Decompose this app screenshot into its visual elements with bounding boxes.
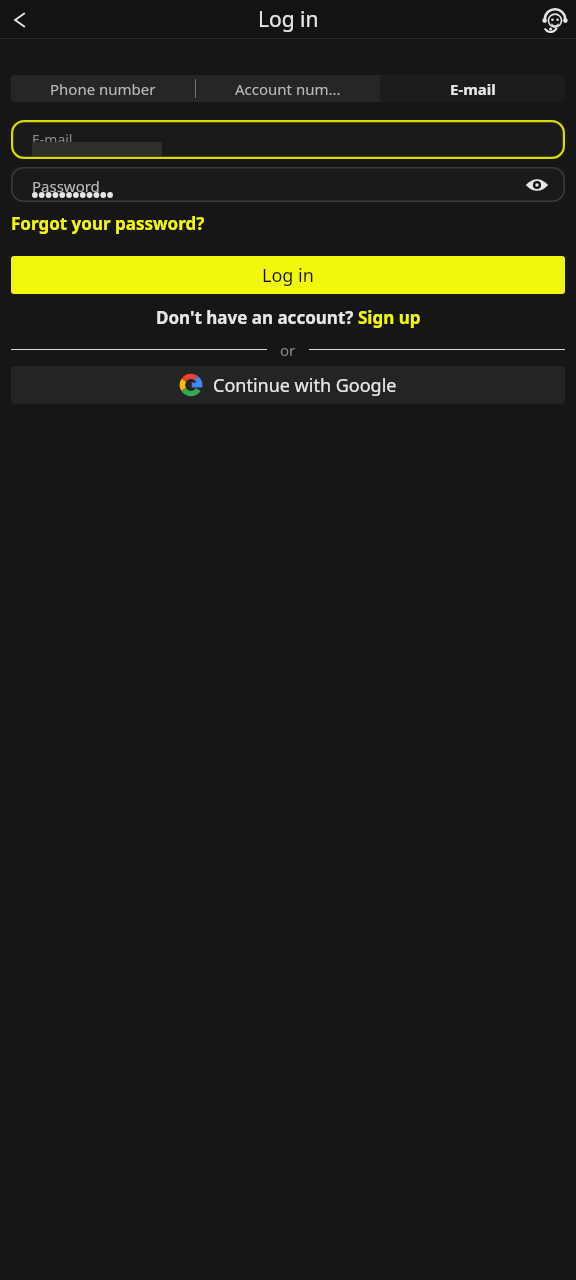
staticText: Account num...: [235, 79, 341, 99]
button[interactable]: Log in: [11, 256, 565, 294]
button[interactable]: E-mail: [11, 120, 565, 159]
staticText: Forgot your password?: [11, 212, 205, 235]
staticText: E-mail: [32, 130, 73, 149]
staticText: Password: [32, 176, 100, 196]
staticText: or: [280, 340, 296, 358]
staticText: E-mail: [450, 79, 496, 99]
button[interactable]: Continue with Google: [11, 366, 565, 404]
button[interactable]: Password: [11, 167, 565, 202]
button[interactable]: E-mail: [380, 75, 565, 102]
button[interactable]: Forgot your password?: [11, 212, 205, 235]
staticText: Phone number: [50, 79, 156, 99]
button[interactable]: Customer support: [540, 5, 570, 35]
staticText: Don't have an account?: [156, 306, 358, 329]
staticText: Log in: [258, 5, 319, 34]
button[interactable]: Show password: [521, 169, 553, 201]
button[interactable]: Sign up: [358, 306, 421, 329]
button[interactable]: Phone number: [11, 75, 195, 102]
button[interactable]: Back: [2, 4, 34, 36]
button[interactable]: Account num...: [195, 75, 380, 102]
staticText: Log in: [262, 263, 314, 288]
staticText: Sign up: [358, 306, 421, 329]
staticText: Continue with Google: [213, 373, 397, 398]
